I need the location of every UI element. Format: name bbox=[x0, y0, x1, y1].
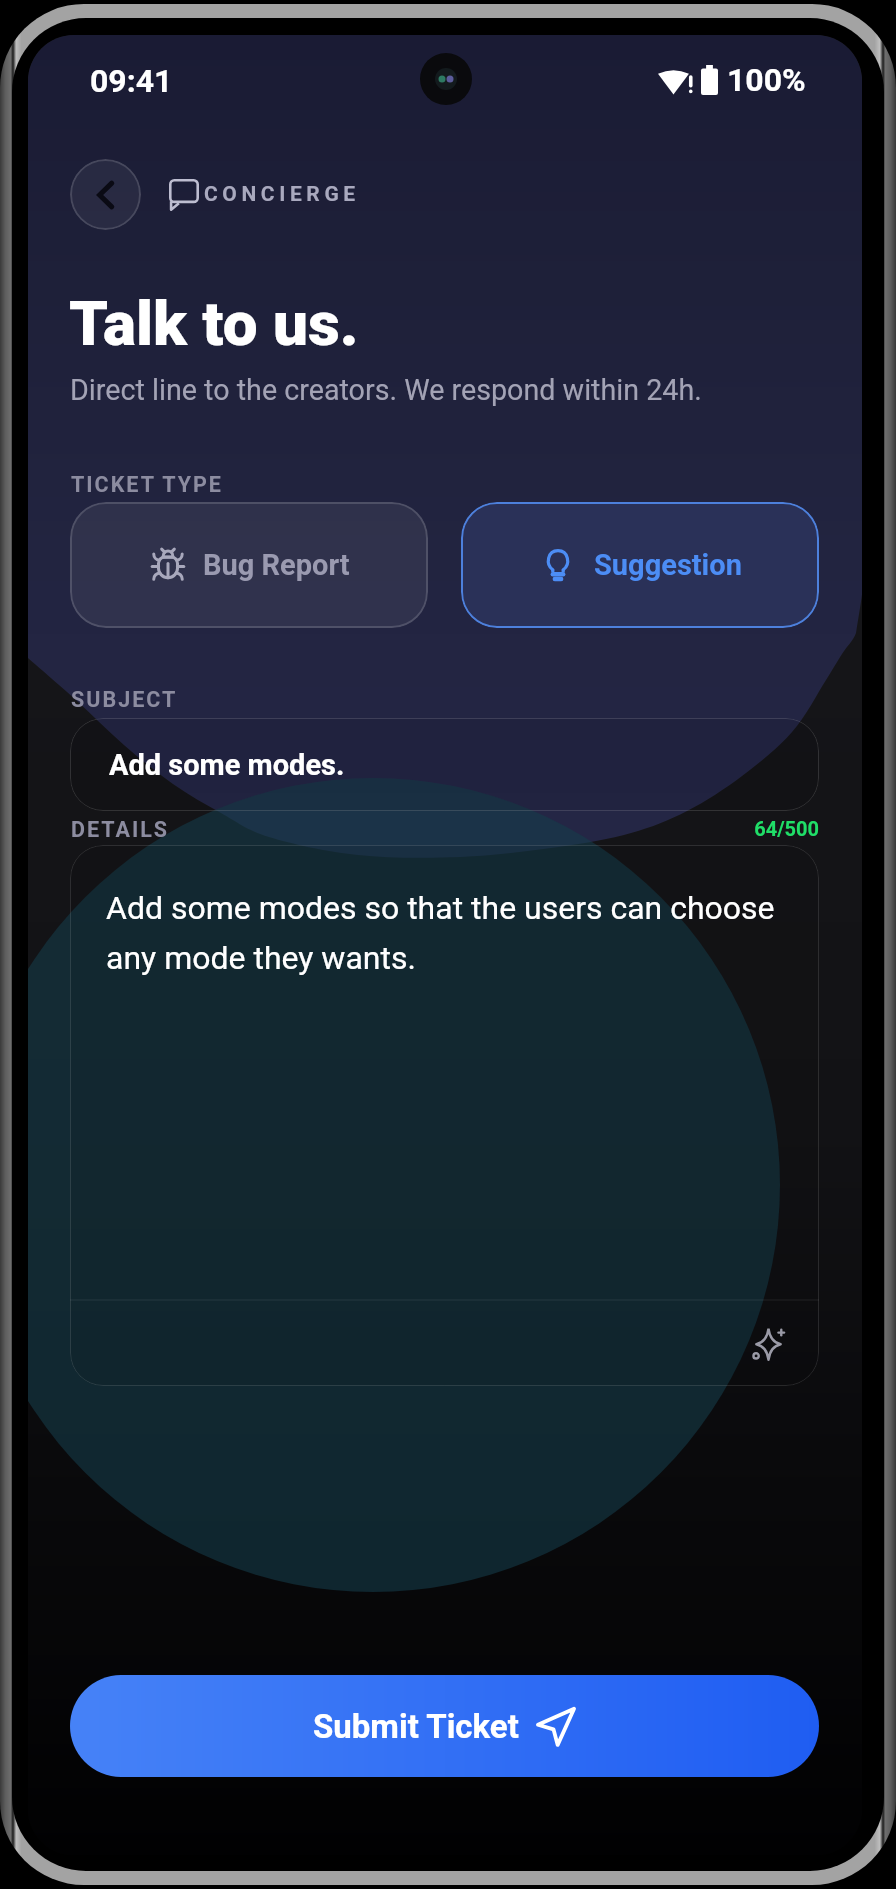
staticText: Add some modes so that the users can cho… bbox=[106, 889, 797, 976]
staticText: Add some modes. bbox=[109, 748, 345, 782]
staticText: SUBJECT bbox=[71, 687, 178, 712]
staticText: Suggestion bbox=[594, 548, 742, 582]
staticText: DETAILS bbox=[71, 817, 170, 842]
button[interactable]: Add some modes. bbox=[70, 718, 819, 811]
button[interactable]: Add some modes so that the users can cho… bbox=[70, 845, 819, 1386]
staticText: Talk to us. bbox=[69, 287, 359, 360]
staticText: CONCIERGE bbox=[204, 182, 360, 207]
button[interactable]: AI assist bbox=[746, 1321, 790, 1365]
button[interactable]: Back bbox=[70, 159, 141, 230]
button[interactable]: Suggestion bbox=[461, 502, 819, 628]
staticText: Direct line to the creators. We respond … bbox=[70, 373, 702, 407]
staticText: Bug Report bbox=[203, 548, 350, 582]
staticText: 09:41 bbox=[90, 62, 173, 100]
staticText: Submit Ticket bbox=[313, 1707, 519, 1746]
staticText: 64/500 bbox=[28, 817, 819, 840]
staticText: 100% bbox=[727, 61, 806, 99]
staticText: TICKET TYPE bbox=[71, 472, 223, 497]
button[interactable]: Bug Report bbox=[70, 502, 428, 628]
button[interactable]: Submit Ticket bbox=[70, 1675, 819, 1777]
